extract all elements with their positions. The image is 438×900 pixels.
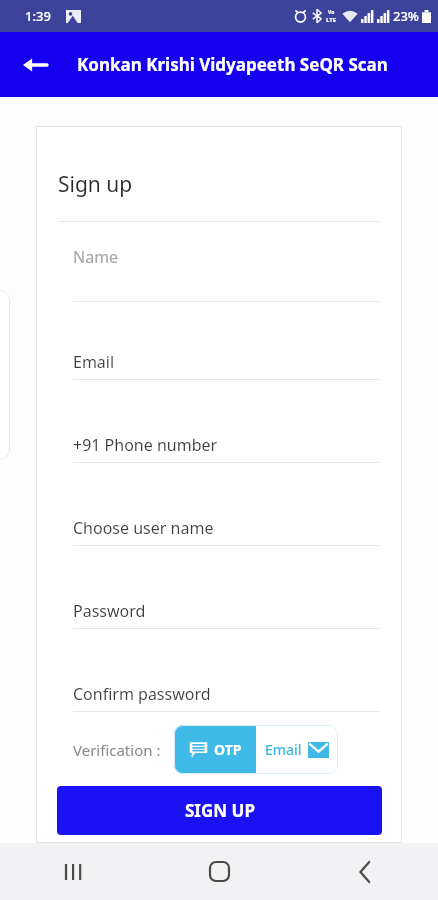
staticText: Konkan Krishi Vidyapeeth SeQR Scan	[77, 53, 388, 76]
staticText: Verification :	[73, 740, 161, 760]
button[interactable]: Email	[73, 351, 115, 373]
button[interactable]: Choose user name	[73, 517, 214, 539]
staticText: Sign up	[58, 170, 133, 199]
staticText: OTP	[214, 740, 242, 759]
staticText: 23%	[393, 7, 419, 25]
button[interactable]: Name	[73, 246, 119, 268]
button[interactable]: Confirm password	[73, 683, 211, 705]
staticText: Vo	[328, 9, 335, 16]
staticText: 1:39	[25, 7, 51, 25]
staticText: Email	[265, 740, 302, 759]
button[interactable]: OTP	[174, 725, 256, 774]
button[interactable]: Recents	[0, 843, 146, 900]
staticText: LTE	[326, 16, 337, 24]
button[interactable]: SIGN UP	[57, 786, 382, 835]
button[interactable]: Back	[292, 843, 438, 900]
staticText: SIGN UP	[185, 799, 255, 822]
button[interactable]: Home	[146, 843, 292, 900]
button[interactable]: Password	[73, 600, 146, 622]
button[interactable]: +91 Phone number	[73, 434, 218, 456]
button[interactable]: Back	[13, 43, 57, 87]
button[interactable]: Email	[256, 725, 338, 774]
